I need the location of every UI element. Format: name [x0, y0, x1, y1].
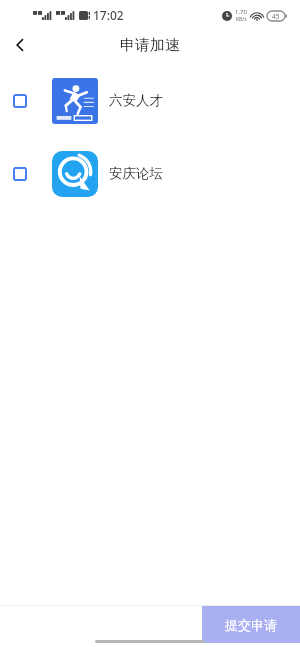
staticText: 提交申请 — [225, 617, 277, 633]
other: Select 安庆论坛 — [13, 167, 27, 181]
staticText: 45 — [272, 12, 280, 21]
button[interactable]: Select 六安人才 — [0, 77, 300, 124]
staticText: 1.70 — [235, 8, 247, 16]
staticText: 安庆论坛 — [109, 165, 163, 182]
button[interactable]: Select 安庆论坛 — [0, 150, 300, 197]
staticText: 17:02 — [93, 7, 124, 23]
other: Select 六安人才 — [13, 94, 27, 108]
button[interactable]: 提交申请 — [202, 606, 300, 643]
staticText: 申请加速 — [120, 36, 180, 55]
staticText: KB/s — [236, 16, 247, 23]
button[interactable]: Back — [0, 30, 40, 60]
staticText: 六安人才 — [109, 92, 163, 109]
